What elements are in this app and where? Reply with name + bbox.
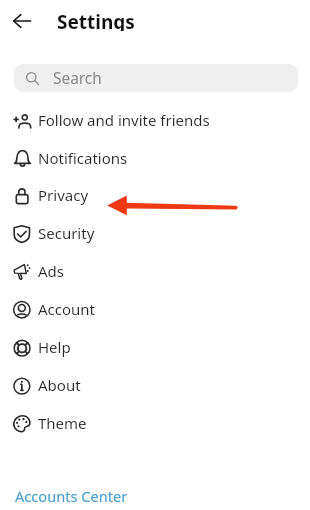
button[interactable]: Follow and invite friends — [0, 102, 310, 140]
button[interactable]: Account — [0, 291, 310, 329]
staticText: Help — [38, 337, 71, 357]
staticText: Settings — [57, 9, 135, 31]
staticText: Notifications — [38, 148, 128, 168]
staticText: Theme — [38, 413, 87, 433]
button[interactable]: About — [0, 367, 310, 405]
staticText: Privacy — [38, 185, 89, 205]
button[interactable]: Notifications — [0, 140, 310, 178]
staticText: About — [38, 375, 81, 395]
button[interactable]: Security — [0, 215, 310, 253]
staticText: Accounts Center — [15, 486, 128, 505]
staticText: Follow and invite friends — [38, 110, 210, 130]
button[interactable]: Settings — [57, 9, 135, 31]
button[interactable]: Accounts Center — [15, 486, 128, 505]
staticText: Ads — [38, 261, 64, 281]
button[interactable]: Privacy — [0, 177, 310, 215]
button[interactable]: Ads — [0, 253, 310, 291]
button[interactable]: Search — [14, 64, 298, 92]
button[interactable]: Back — [7, 6, 37, 36]
staticText: Account — [38, 299, 96, 319]
button[interactable]: Theme — [0, 405, 310, 443]
staticText: Search — [53, 68, 102, 89]
button[interactable]: Help — [0, 329, 310, 367]
staticText: Security — [38, 223, 95, 243]
